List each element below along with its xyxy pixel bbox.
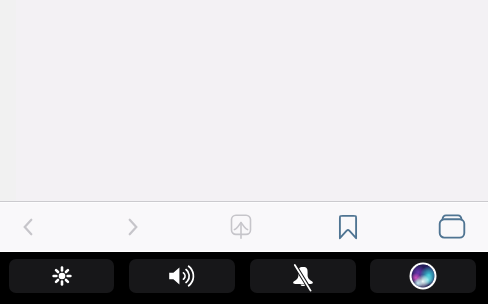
- button[interactable]: Brightness: [9, 259, 114, 293]
- button[interactable]: Siri: [370, 259, 476, 293]
- button[interactable]: Tabs: [424, 202, 480, 252]
- button[interactable]: Back: [0, 202, 56, 252]
- button[interactable]: Mute notifications: [250, 259, 356, 293]
- button[interactable]: Forward: [105, 202, 161, 252]
- button[interactable]: Volume: [129, 259, 235, 293]
- button[interactable]: Share: [213, 202, 269, 252]
- button[interactable]: Bookmarks: [320, 202, 376, 252]
